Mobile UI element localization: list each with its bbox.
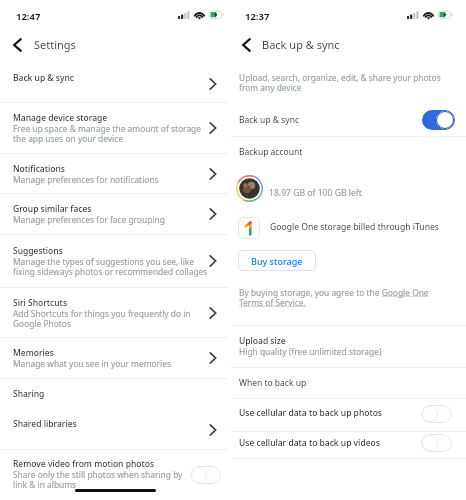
- staticText: 12:37: [245, 10, 270, 23]
- staticText: Settings: [34, 37, 76, 52]
- button[interactable]: Back: [236, 35, 256, 55]
- button[interactable]: [0, 450, 228, 490]
- staticText: Share only the still photos when sharing…: [13, 469, 183, 490]
- staticText: Back up & sync: [262, 37, 340, 52]
- button[interactable]: [0, 379, 228, 410]
- button[interactable]: [0, 235, 228, 287]
- button[interactable]: [231, 368, 466, 398]
- button[interactable]: Switch on: [422, 110, 455, 130]
- staticText: Sharing: [13, 388, 45, 400]
- button[interactable]: Switch off: [421, 405, 452, 423]
- staticText: Upload, search, organize, edit, & share …: [239, 72, 441, 93]
- staticText: Add Shortcuts for things you frequently …: [13, 308, 191, 329]
- staticText: Manage the types of suggestions you see,…: [13, 256, 208, 277]
- staticText: When to back up: [239, 377, 307, 389]
- staticText: Group similar faces: [13, 203, 92, 215]
- staticText: Upload size: [239, 335, 286, 347]
- button[interactable]: [0, 338, 228, 378]
- staticText: Manage preferences for face grouping: [13, 214, 165, 225]
- staticText: Manage preferences for notifications: [13, 174, 159, 185]
- button[interactable]: Back: [7, 35, 27, 55]
- staticText: High quality (free unlimited storage): [239, 346, 382, 357]
- button[interactable]: [231, 105, 466, 136]
- staticText: Notifications: [13, 163, 65, 175]
- staticText: Suggestions: [13, 245, 63, 257]
- button[interactable]: Buy storage: [238, 250, 316, 271]
- button[interactable]: [0, 411, 228, 449]
- staticText: Use cellular data to back up photos: [239, 407, 382, 419]
- staticText: Google One storage billed through iTunes: [270, 221, 439, 233]
- staticText: Siri Shortcuts: [13, 297, 68, 309]
- staticText: Back up & sync: [239, 114, 299, 126]
- staticText: Buy storage: [251, 255, 303, 267]
- button[interactable]: [0, 103, 228, 153]
- button[interactable]: Switch off: [190, 466, 221, 484]
- staticText: Back up & sync: [13, 72, 74, 84]
- staticText: Backup account: [239, 146, 303, 158]
- button[interactable]: [0, 288, 228, 337]
- staticText: Free up space & manage the amount of sto…: [13, 123, 202, 144]
- staticText: Manage what you see in your memories: [13, 358, 171, 369]
- staticText: Remove video from motion photos: [13, 458, 155, 470]
- button[interactable]: [231, 326, 466, 366]
- button[interactable]: [231, 399, 466, 431]
- button[interactable]: [0, 154, 228, 193]
- staticText: Use cellular data to back up videos: [239, 437, 380, 449]
- staticText: Memories: [13, 347, 54, 359]
- button[interactable]: [231, 432, 466, 458]
- staticText: Shared libraries: [13, 418, 77, 430]
- button[interactable]: [0, 60, 228, 102]
- staticText: By buying storage, you agree to the Goog…: [239, 287, 445, 308]
- button[interactable]: Switch off: [421, 434, 452, 452]
- staticText: 12:47: [16, 10, 41, 23]
- staticText: Manage device storage: [13, 112, 108, 124]
- staticText: 18.97 GB of 100 GB left: [269, 187, 362, 199]
- button[interactable]: [0, 194, 228, 234]
